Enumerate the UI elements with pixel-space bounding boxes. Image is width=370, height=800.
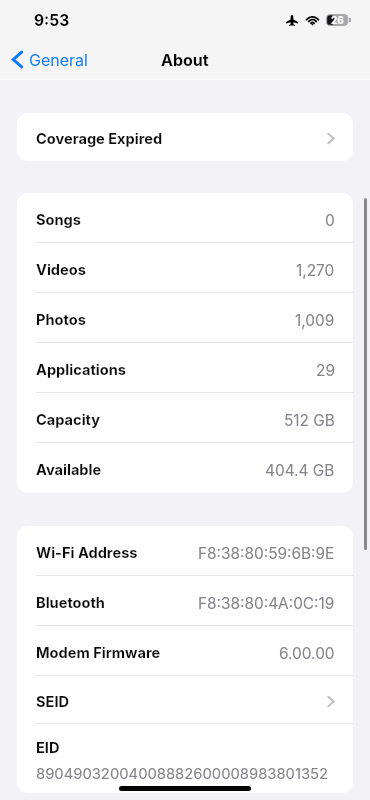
staticText: Bluetooth — [36, 594, 105, 612]
staticText: Wi-Fi Address — [36, 544, 138, 562]
staticText: 1,009 — [295, 311, 335, 330]
staticText: Photos — [36, 311, 86, 329]
button[interactable]: Modem Firmware — [17, 626, 353, 676]
staticText: 1,270 — [296, 261, 335, 280]
button[interactable]: SEID — [17, 676, 353, 724]
staticText: Songs — [36, 211, 81, 229]
staticText: SEID — [36, 693, 70, 711]
staticText: 512 GB — [284, 411, 335, 430]
button[interactable]: General — [0, 45, 98, 74]
button[interactable]: Videos — [17, 243, 353, 293]
staticText: Coverage Expired — [36, 130, 163, 148]
staticText: Videos — [36, 261, 86, 279]
button[interactable]: Bluetooth — [17, 576, 353, 626]
staticText: 29 — [316, 361, 335, 380]
staticText: EID — [36, 739, 60, 757]
staticText: Available — [36, 461, 102, 479]
staticText: F8:38:80:4A:0C:19 — [198, 594, 335, 613]
button[interactable]: Coverage Expired — [17, 113, 353, 161]
staticText: Capacity — [36, 411, 101, 429]
button[interactable]: Applications — [17, 343, 353, 393]
staticText: F8:38:80:59:6B:9E — [198, 544, 335, 563]
button[interactable]: Capacity — [17, 393, 353, 443]
staticText: 0 — [325, 211, 335, 230]
staticText: 89049032004008882600008983801352 — [36, 765, 329, 783]
button[interactable]: Photos — [17, 293, 353, 343]
button[interactable]: Wi-Fi Address — [17, 526, 353, 576]
staticText: 9:53 — [34, 11, 70, 30]
button[interactable]: Available — [17, 443, 353, 493]
staticText: About — [161, 50, 209, 69]
staticText: 6.00.00 — [279, 644, 335, 663]
staticText: Modem Firmware — [36, 644, 161, 662]
staticText: General — [29, 50, 88, 69]
staticText: Applications — [36, 361, 126, 379]
staticText: 404.4 GB — [265, 461, 335, 480]
button[interactable]: EID — [17, 724, 353, 793]
staticText: 26 — [331, 14, 344, 26]
button[interactable]: Songs — [17, 193, 353, 243]
